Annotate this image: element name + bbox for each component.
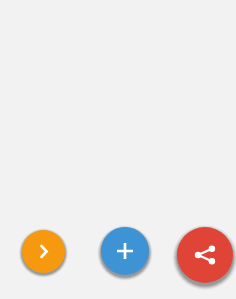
button[interactable]: Share (177, 227, 233, 283)
button[interactable]: Next (22, 230, 65, 273)
button[interactable]: Add (101, 227, 149, 275)
